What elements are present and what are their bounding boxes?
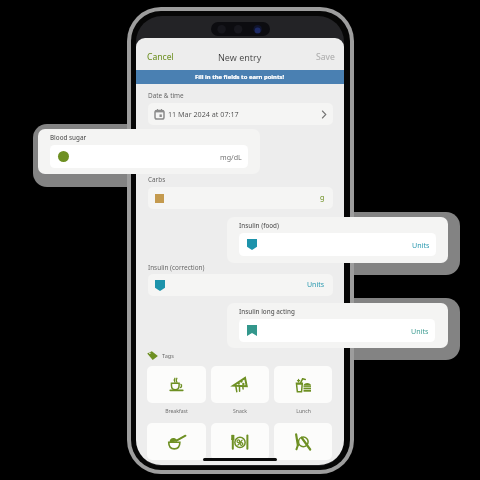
button[interactable]: Cancel <box>141 45 180 69</box>
staticText: Carbs <box>148 175 166 184</box>
staticText: g <box>320 193 325 203</box>
staticText: Date & time <box>148 91 184 100</box>
staticText: Insulin long acting <box>239 307 295 316</box>
button[interactable]: Blood sugar <box>38 129 260 174</box>
button[interactable]: Tag <box>274 423 332 460</box>
button[interactable]: Snack <box>211 366 269 403</box>
button[interactable]: Save <box>310 45 341 69</box>
staticText: Save <box>316 51 335 63</box>
staticText: Cancel <box>147 51 174 63</box>
button[interactable]: Breakfast <box>147 366 206 403</box>
staticText: Fill in the fields to earn points! <box>195 73 285 81</box>
staticText: New entry <box>218 51 262 63</box>
button[interactable]: Fill in the fields to earn points! <box>136 70 344 84</box>
button[interactable]: Tag <box>211 423 269 460</box>
staticText: Units <box>307 280 325 290</box>
staticText: Units <box>412 240 430 250</box>
button[interactable]: Tag <box>147 423 206 460</box>
staticText: 11 Mar 2024 at 07:17 <box>168 109 239 119</box>
button[interactable]: Lunch <box>274 366 332 403</box>
button[interactable]: Insulin (food) <box>227 217 448 263</box>
staticText: Tags <box>162 352 174 360</box>
staticText: Snack <box>233 408 247 415</box>
button[interactable]: Units <box>148 274 333 296</box>
staticText: Insulin (correction) <box>148 263 205 272</box>
staticText: mg/dL <box>220 152 242 162</box>
staticText: Breakfast <box>165 408 188 415</box>
button[interactable]: g <box>148 187 333 209</box>
button[interactable]: 11 Mar 2024 at 07:17 <box>148 103 333 125</box>
staticText: Lunch <box>296 408 311 415</box>
button[interactable]: Insulin long acting <box>227 303 448 348</box>
staticText: Blood sugar <box>50 133 87 142</box>
staticText: Units <box>411 326 429 336</box>
staticText: Insulin (food) <box>239 221 279 230</box>
